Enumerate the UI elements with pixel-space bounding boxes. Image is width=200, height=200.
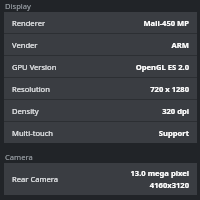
button[interactable]: Resolution xyxy=(4,78,197,99)
staticText: Density xyxy=(12,106,39,116)
button[interactable]: Vender xyxy=(4,34,197,55)
staticText: Support xyxy=(158,128,189,138)
button[interactable]: Multi-touch xyxy=(4,122,197,143)
staticText: 320 dpi xyxy=(162,106,189,116)
button[interactable]: Renderer xyxy=(4,12,197,33)
staticText: ARM xyxy=(171,40,189,50)
button[interactable]: Rear Camera xyxy=(4,163,197,195)
staticText: Renderer xyxy=(12,18,46,28)
staticText: Mali-450 MP xyxy=(143,18,189,28)
staticText: Multi-touch xyxy=(12,128,54,138)
button[interactable]: Density xyxy=(4,100,197,121)
button[interactable]: GPU Version xyxy=(4,56,197,77)
staticText: Camera xyxy=(5,152,33,162)
staticText: Rear Camera xyxy=(12,174,59,184)
staticText: Display xyxy=(5,1,31,11)
staticText: 720 x 1280 xyxy=(150,84,189,94)
staticText: 4160x3120 xyxy=(149,180,189,190)
staticText: 13.0 mega pixel xyxy=(130,168,189,178)
staticText: Vender xyxy=(12,40,38,50)
staticText: OpenGL ES 2.0 xyxy=(135,62,189,72)
staticText: Resolution xyxy=(12,84,50,94)
staticText: GPU Version xyxy=(12,62,57,72)
